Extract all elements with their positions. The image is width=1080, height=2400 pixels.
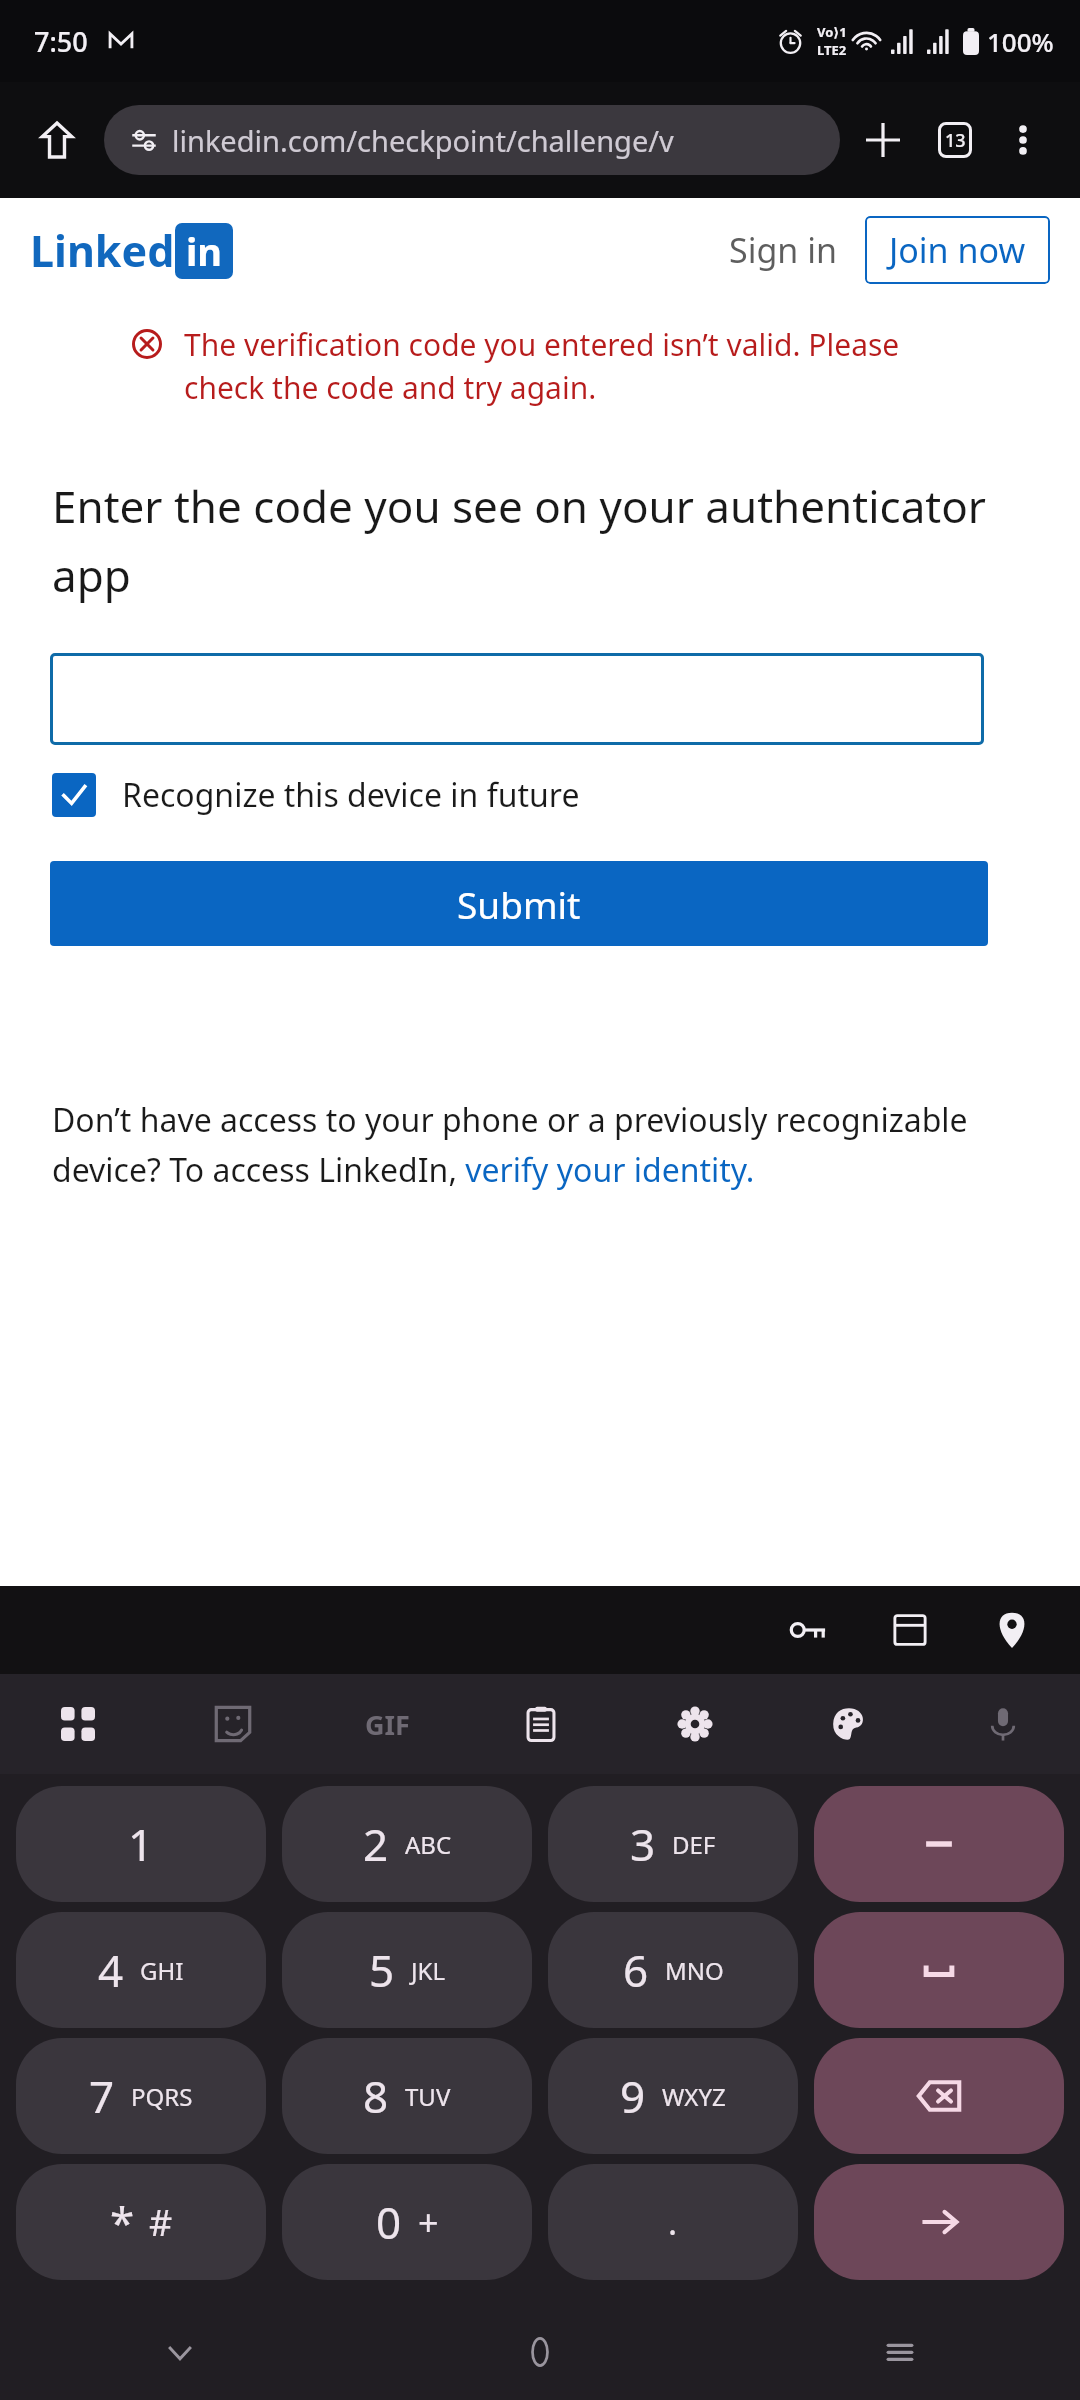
staticText: MNO <box>665 1954 724 1987</box>
staticText: Sign in <box>729 227 837 273</box>
staticText: Linked <box>30 221 175 280</box>
staticText: in <box>186 225 223 277</box>
staticText: TUV <box>405 2080 451 2113</box>
button[interactable]: 1 <box>16 1786 266 1902</box>
button[interactable]: Don’t have access to your phone or a pre… <box>52 1098 1022 1192</box>
staticText: Don’t have access to your phone or a pre… <box>52 1098 1022 1192</box>
button[interactable]: 9 <box>548 2038 798 2154</box>
button[interactable]: * <box>16 2164 266 2280</box>
staticText: 7:50 <box>34 23 88 60</box>
button[interactable]: Sign in <box>715 215 851 285</box>
button[interactable]: GIF <box>310 1674 464 1774</box>
staticText: linkedin.com/checkpoint/challenge/v <box>172 121 674 160</box>
staticText: 6 <box>623 1940 649 2000</box>
button[interactable]: Voice input <box>926 1674 1080 1774</box>
button[interactable]: Stickers <box>155 1674 310 1774</box>
button[interactable]: Recent apps <box>720 2304 1080 2400</box>
staticText: Submit <box>457 879 581 929</box>
staticText: 7 <box>89 2066 115 2126</box>
staticText: JKL <box>411 1954 445 1987</box>
button[interactable]: 3 <box>548 1786 798 1902</box>
button[interactable]: 5 <box>282 1912 532 2028</box>
staticText: + <box>418 2198 439 2247</box>
button[interactable]: New tab <box>850 107 916 173</box>
button[interactable]: Home <box>360 2304 720 2400</box>
staticText: 8 <box>363 2066 389 2126</box>
button[interactable]: Enter <box>814 2164 1064 2280</box>
button[interactable]: Tabs, 13 open <box>922 107 988 173</box>
button[interactable]: linkedin.com/checkpoint/challenge/v <box>104 105 840 175</box>
staticText: ABC <box>405 1828 452 1861</box>
button[interactable]: Linked <box>30 221 233 280</box>
button[interactable]: Settings <box>618 1674 772 1774</box>
button[interactable]: 6 <box>548 1912 798 2028</box>
staticText: GHI <box>140 1954 184 1987</box>
staticText: Enter the code you see on your authentic… <box>52 476 1010 605</box>
button[interactable]: Home <box>26 109 88 171</box>
button[interactable]: Payment methods <box>878 1598 942 1662</box>
staticText: Recognize this device in future <box>122 773 580 817</box>
staticText: DEF <box>672 1828 716 1861</box>
staticText: 4 <box>98 1940 124 2000</box>
button[interactable] <box>50 653 984 745</box>
staticText: Join now <box>889 227 1026 273</box>
staticText: * <box>110 2192 135 2252</box>
staticText: 3 <box>630 1814 656 1874</box>
staticText: . <box>668 2199 678 2245</box>
staticText: 9 <box>620 2066 646 2126</box>
staticText: 0 <box>376 2192 402 2252</box>
button[interactable]: Dash <box>814 1786 1064 1902</box>
button[interactable]: Back <box>0 2304 360 2400</box>
button[interactable]: Backspace <box>814 2038 1064 2154</box>
staticText: LTE2 <box>817 41 847 59</box>
button[interactable]: 0 <box>282 2164 532 2280</box>
staticText: PQRS <box>131 2080 193 2113</box>
staticText: # <box>149 2198 173 2247</box>
staticText: 100% <box>987 24 1054 59</box>
button[interactable]: Space <box>814 1912 1064 2028</box>
button[interactable]: 7 <box>16 2038 266 2154</box>
button[interactable]: 2 <box>282 1786 532 1902</box>
staticText: GIF <box>365 1706 410 1743</box>
staticText: 2 <box>363 1814 389 1874</box>
button[interactable]: Clipboard <box>464 1674 618 1774</box>
button[interactable]: More options <box>992 109 1054 171</box>
button[interactable]: Themes <box>772 1674 926 1774</box>
staticText: 1 <box>128 1814 154 1874</box>
staticText: WXYZ <box>662 2080 726 2113</box>
button[interactable]: Passwords <box>776 1598 840 1662</box>
button[interactable]: Addresses <box>980 1598 1044 1662</box>
button[interactable]: Submit <box>50 861 988 946</box>
staticText: The verification code you entered isn’t … <box>184 324 930 408</box>
staticText: 5 <box>369 1940 395 2000</box>
button[interactable]: 4 <box>16 1912 266 2028</box>
button[interactable]: 8 <box>282 2038 532 2154</box>
button[interactable]: . <box>548 2164 798 2280</box>
staticText: Vo⟩1 <box>817 23 847 41</box>
button[interactable]: Keyboard switcher <box>0 1674 155 1774</box>
button[interactable]: Recognize this device in future <box>52 773 580 817</box>
button[interactable]: Join now <box>865 216 1050 284</box>
staticText: 13 <box>945 128 966 153</box>
